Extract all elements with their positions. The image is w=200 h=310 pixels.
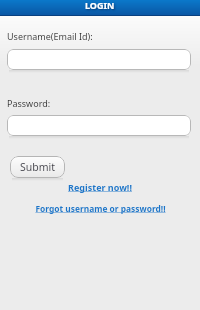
button[interactable] [7, 115, 191, 136]
button[interactable]: Submit [10, 156, 65, 178]
staticText: LOGIN [85, 0, 115, 11]
button[interactable]: Register now!! [68, 181, 132, 193]
staticText: Username(Email Id): [7, 30, 93, 42]
staticText: Submit [20, 160, 56, 174]
button[interactable] [7, 49, 191, 70]
staticText: Password: [7, 97, 51, 109]
button[interactable]: Forgot username or password!! [35, 203, 166, 214]
